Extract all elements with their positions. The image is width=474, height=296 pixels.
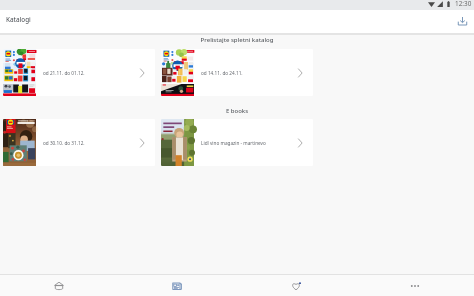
staticText: 12:30	[455, 0, 472, 8]
button[interactable]: Download	[456, 14, 469, 27]
button[interactable]: od 14.11. do 24.11.	[161, 49, 313, 96]
button[interactable]: Catalogs	[118, 275, 236, 296]
button[interactable]: od 30.10. do 31.12.	[3, 119, 155, 166]
staticText: Katalogi	[6, 15, 31, 24]
button[interactable]: Favourites	[236, 275, 355, 296]
button[interactable]: More	[355, 275, 474, 296]
button[interactable]: Cart	[0, 275, 118, 296]
staticText: od 14.11. do 24.11.	[201, 70, 297, 76]
button[interactable]: Lidl vino magazin - martinevo	[161, 119, 313, 166]
button[interactable]: od 21.11. do 01.12.	[3, 49, 155, 96]
staticText: E books	[0, 107, 474, 115]
staticText: od 30.10. do 31.12.	[43, 140, 139, 146]
staticText: Prelistajte spletni katalog	[0, 36, 474, 44]
staticText: Lidl vino magazin - martinevo	[201, 140, 297, 146]
staticText: od 21.11. do 01.12.	[43, 70, 139, 76]
